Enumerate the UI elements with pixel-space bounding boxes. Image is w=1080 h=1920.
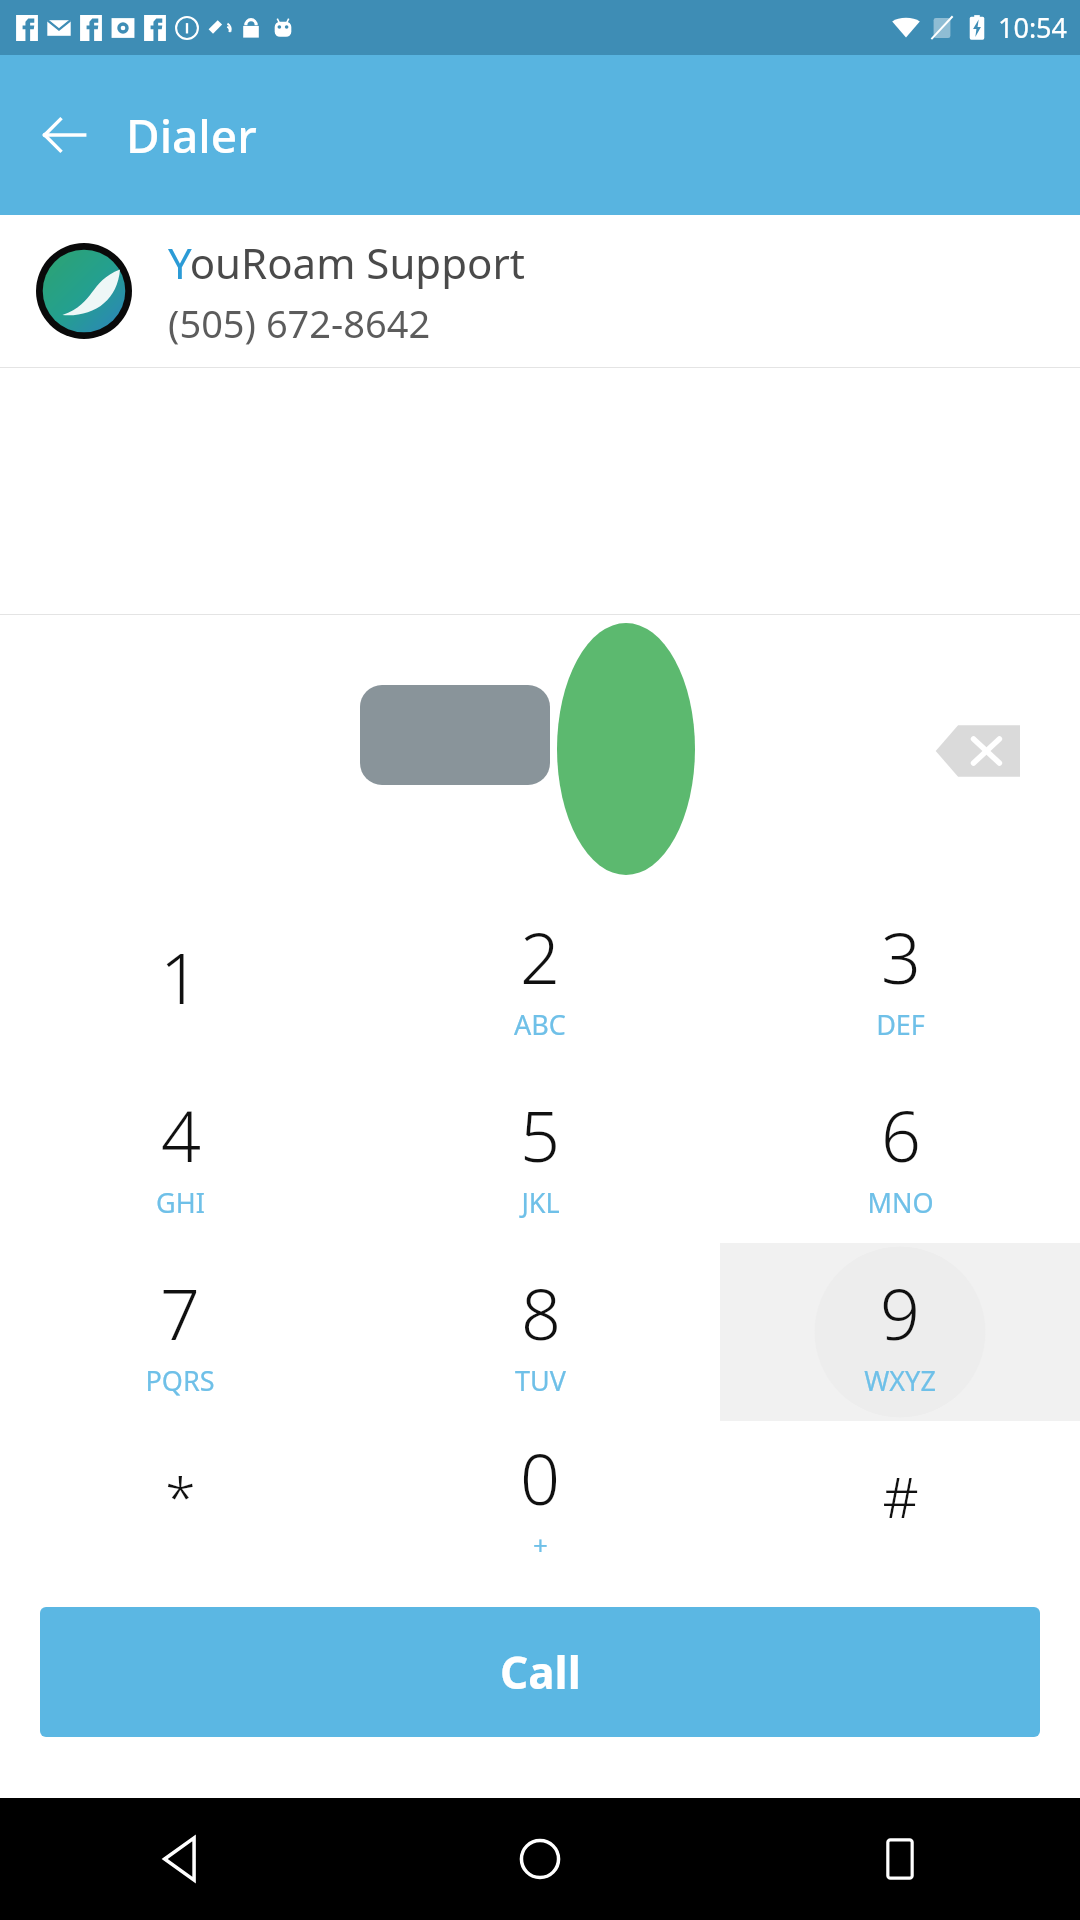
button[interactable]: 1 [0,887,360,1065]
button[interactable]: 9 [720,1243,1080,1421]
staticText: 3 [881,909,921,1004]
button[interactable]: 4 [0,1065,360,1243]
button[interactable]: Recents [720,1798,1080,1920]
button[interactable]: Back [24,95,104,175]
staticText: # [882,1458,919,1534]
staticText: 4 [161,1087,201,1182]
button[interactable]: Back [0,1798,360,1920]
staticText: 8 [521,1265,561,1360]
staticText: Dialer [126,104,257,167]
button[interactable]: 8 [360,1243,720,1421]
button[interactable]: 6 [720,1065,1080,1243]
button[interactable]: # [720,1421,1080,1571]
staticText: MNO [867,1184,934,1221]
staticText: PQRS [145,1362,215,1399]
button[interactable]: 2 [360,887,720,1065]
staticText: 6 [881,1087,921,1182]
button[interactable]: Home [360,1798,720,1920]
staticText: 10:54 [998,9,1068,46]
staticText: WXYZ [864,1362,936,1399]
button[interactable]: * [0,1421,360,1571]
staticText: 2 [520,909,560,1004]
staticText: 7 [160,1265,200,1360]
staticText: ABC [514,1006,566,1043]
button[interactable]: 0 [360,1421,720,1571]
button[interactable]: YouRoam Support [0,215,1080,368]
staticText: 0 [520,1430,560,1525]
staticText: YouRoam Support [168,234,525,291]
staticText: Call [500,1642,581,1702]
staticText: + [533,1527,548,1562]
staticText: 1 [160,929,200,1024]
staticText: TUV [515,1362,566,1399]
button[interactable]: 5 [360,1065,720,1243]
button[interactable]: 7 [0,1243,360,1421]
button[interactable]: Backspace [922,696,1032,806]
staticText: GHI [156,1184,205,1221]
staticText: 9 [880,1265,920,1360]
staticText: (505) 672-8642 [168,297,431,349]
button[interactable]: 3 [720,887,1080,1065]
staticText: 5 [520,1087,560,1182]
staticText: DEF [876,1006,925,1043]
staticText: JKL [521,1184,560,1221]
staticText: * [165,1458,196,1534]
button[interactable]: Call [40,1607,1040,1737]
